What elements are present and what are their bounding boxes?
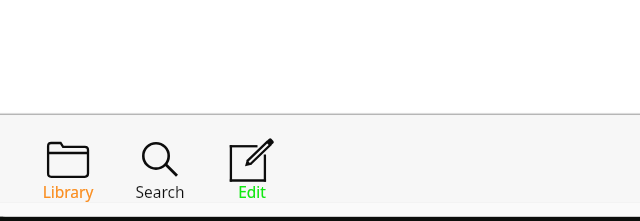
button[interactable]: Library <box>22 115 114 202</box>
staticText: Library <box>22 181 114 202</box>
staticText: Search <box>114 181 206 202</box>
staticText: Edit <box>206 181 298 202</box>
button[interactable]: Search <box>114 115 206 202</box>
button[interactable]: Edit <box>206 115 298 202</box>
